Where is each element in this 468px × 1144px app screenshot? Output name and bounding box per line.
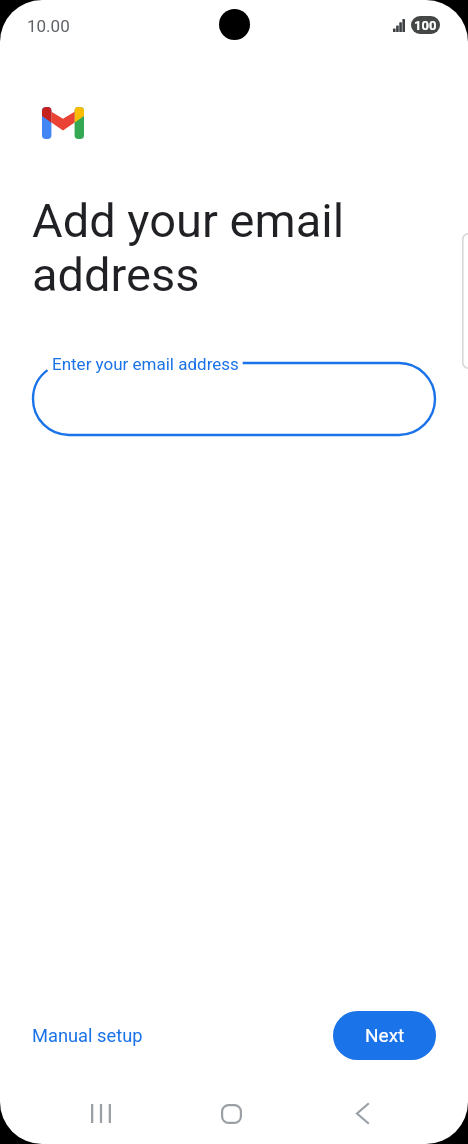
button[interactable]: Recent apps xyxy=(67,1082,134,1144)
button[interactable]: Manual setup xyxy=(24,1020,151,1051)
button[interactable]: Back xyxy=(329,1082,396,1144)
staticText: Next xyxy=(365,1024,405,1046)
staticText: 100 xyxy=(414,18,437,33)
staticText: Add your email address xyxy=(32,193,345,302)
button[interactable]: Next xyxy=(333,1011,436,1060)
staticText: Enter your email address xyxy=(52,354,239,374)
staticText: Manual setup xyxy=(32,1025,143,1046)
staticText: 10.00 xyxy=(27,16,70,36)
button[interactable]: Home xyxy=(198,1082,265,1144)
